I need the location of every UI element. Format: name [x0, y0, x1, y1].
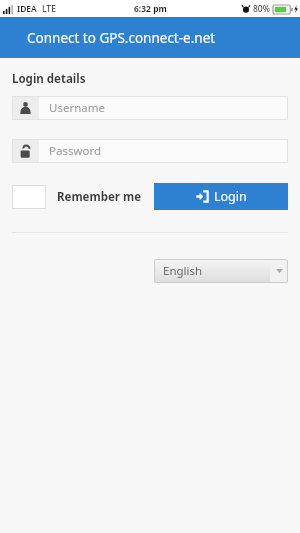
- staticText: Login details: [12, 71, 86, 87]
- staticText: Login: [214, 188, 247, 205]
- button[interactable]: Password: [12, 139, 288, 163]
- staticText: Password: [49, 143, 102, 159]
- staticText: 6:32 pm: [134, 3, 167, 15]
- button[interactable]: Remember me checkbox: [12, 185, 46, 209]
- staticText: Remember me: [57, 189, 142, 205]
- button[interactable]: Connect to GPS.connect-e.net: [0, 17, 300, 58]
- staticText: Connect to GPS.connect-e.net: [27, 29, 216, 47]
- staticText: English: [163, 263, 203, 279]
- staticText: IDEA: [17, 3, 37, 15]
- button[interactable]: English: [154, 259, 288, 283]
- staticText: LTE: [42, 3, 56, 15]
- staticText: Username: [49, 100, 105, 116]
- staticText: 80%: [253, 3, 270, 15]
- button[interactable]: Username: [12, 96, 288, 120]
- button[interactable]: Login: [154, 183, 288, 210]
